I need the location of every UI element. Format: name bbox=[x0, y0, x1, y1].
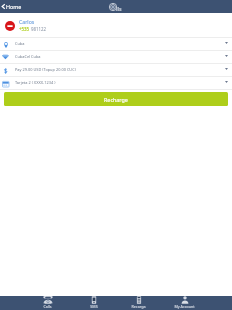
staticText: SMS bbox=[90, 304, 98, 309]
staticText: CubaCel Cuba bbox=[15, 54, 41, 59]
other: Expand bbox=[225, 68, 228, 70]
button[interactable]: SMS bbox=[71, 296, 116, 310]
staticText: 981122 bbox=[31, 26, 47, 32]
other: Expand bbox=[225, 55, 228, 57]
button[interactable]: Tarjeta 2 ( XXXX-1234 ) bbox=[0, 77, 232, 89]
staticText: Cuba bbox=[15, 41, 25, 46]
button[interactable]: Home bbox=[0, 0, 25, 13]
staticText: lls bbox=[116, 5, 122, 12]
button[interactable]: Recharge bbox=[4, 92, 228, 106]
staticText: Recarga bbox=[131, 304, 146, 309]
button[interactable]: My Account bbox=[162, 296, 207, 310]
button[interactable]: Pay 29.00 USD (Topup 20.00 CUC) bbox=[0, 64, 232, 76]
staticText: Pay 29.00 USD (Topup 20.00 CUC) bbox=[15, 67, 76, 72]
button[interactable]: Remove contact bbox=[0, 13, 232, 37]
button[interactable]: Recarga bbox=[116, 296, 161, 310]
button[interactable]: CubaCel Cuba bbox=[0, 51, 232, 63]
staticText: Home bbox=[6, 3, 22, 10]
other: Expand bbox=[225, 81, 228, 83]
staticText: +535 bbox=[19, 26, 31, 32]
staticText: Calls bbox=[43, 304, 52, 309]
staticText: Carlos bbox=[19, 18, 35, 25]
staticText: My Account bbox=[174, 304, 195, 309]
button[interactable]: Cuba bbox=[0, 38, 232, 50]
other: Remove contact bbox=[5, 21, 15, 31]
other: Expand bbox=[225, 42, 228, 44]
button[interactable]: Calls bbox=[25, 296, 70, 310]
staticText: Recharge bbox=[104, 96, 128, 103]
staticText: Tarjeta 2 ( XXXX-1234 ) bbox=[15, 80, 56, 85]
